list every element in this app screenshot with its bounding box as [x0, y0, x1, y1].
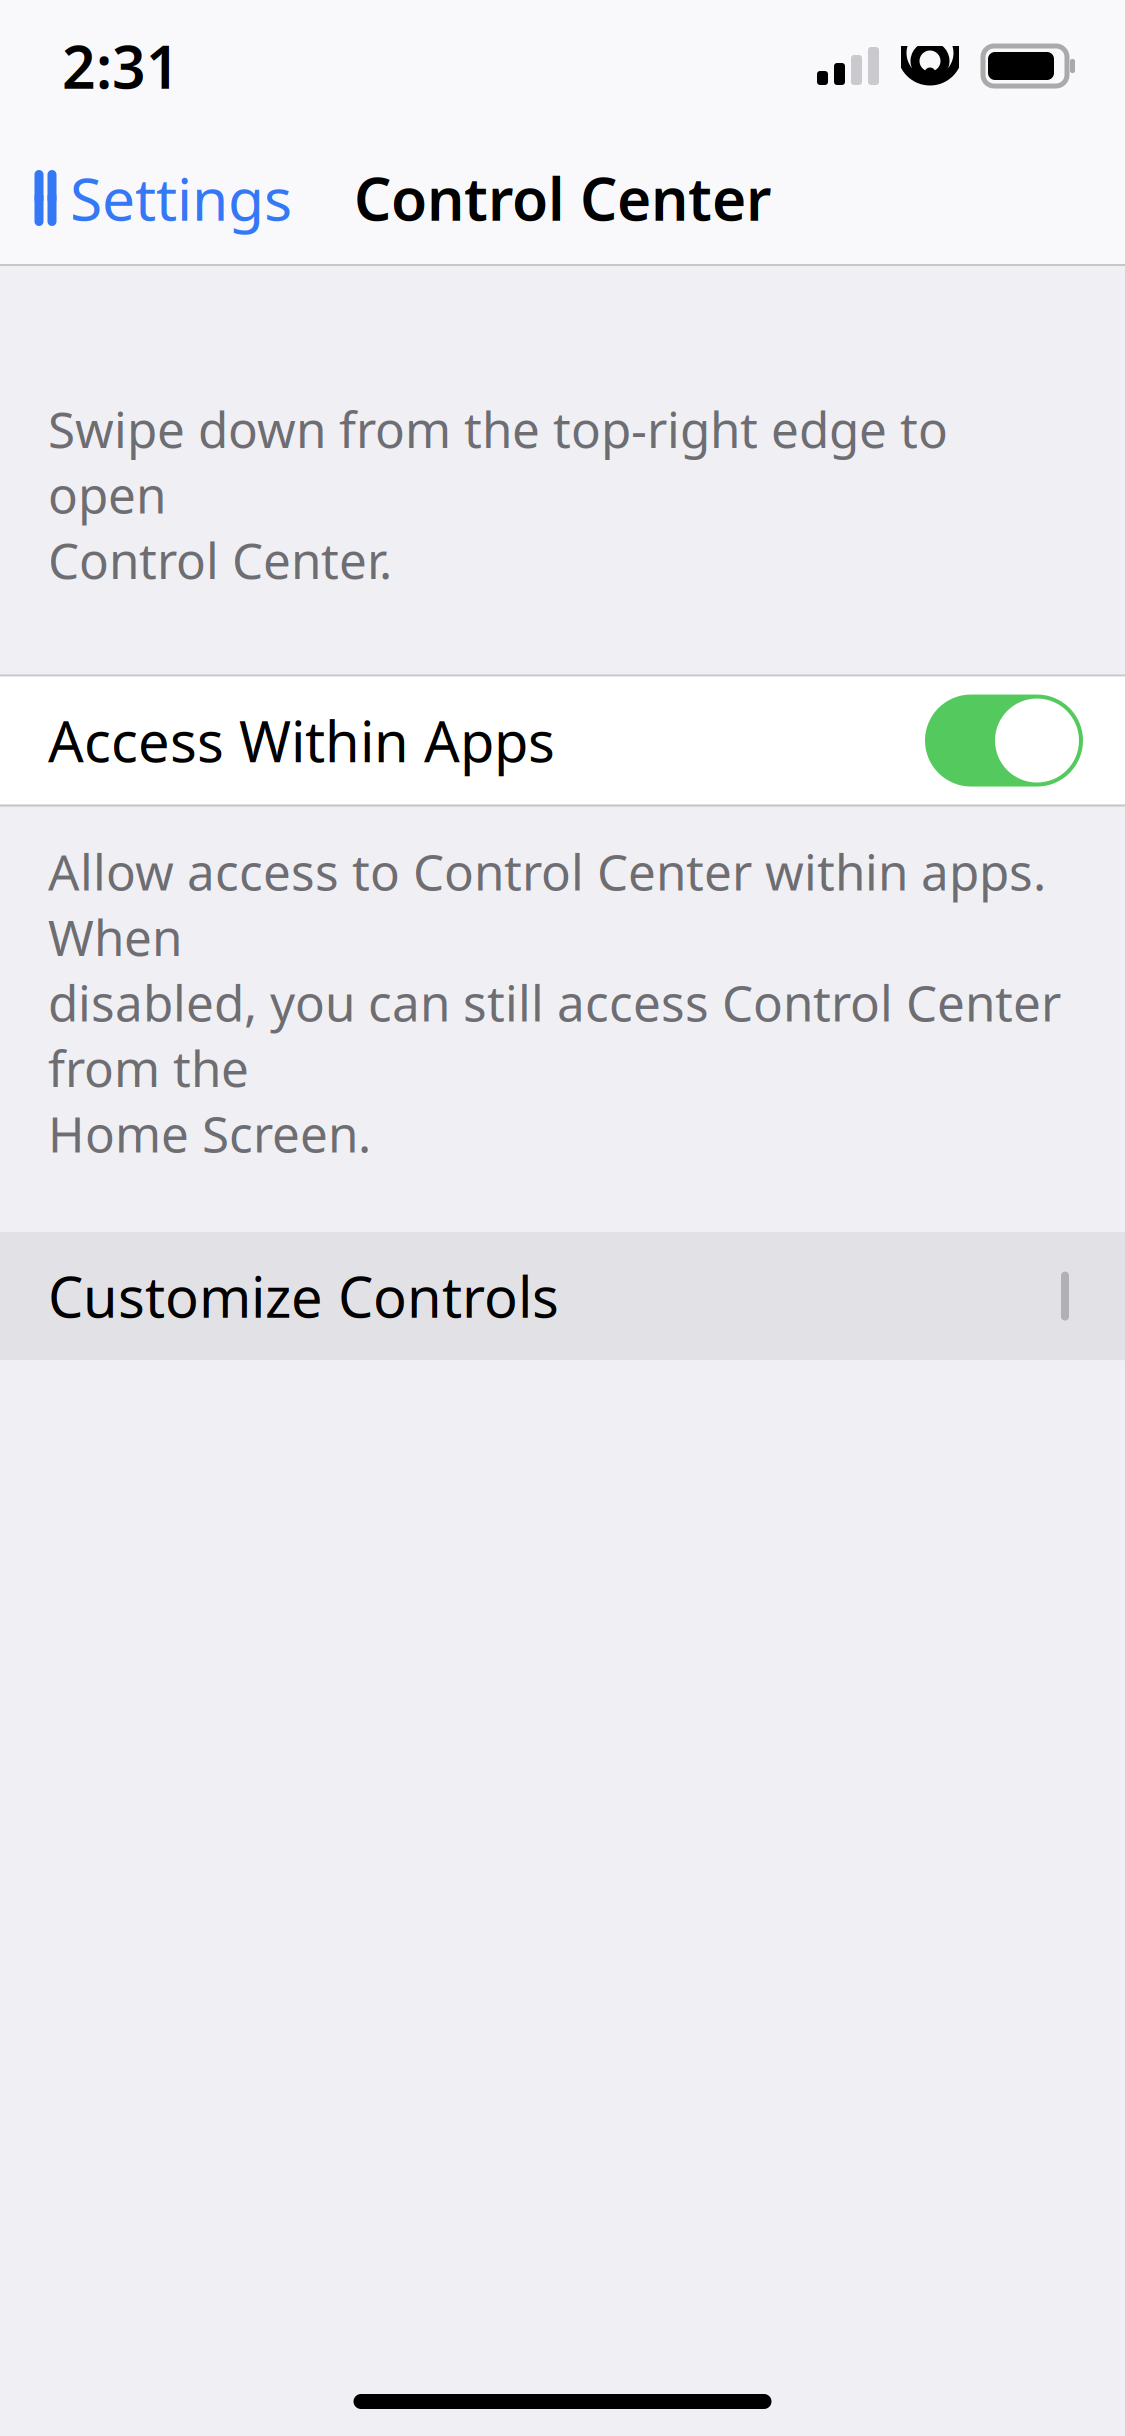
staticText: 2:31 [62, 27, 180, 105]
button[interactable]: Access Within Apps [925, 694, 1083, 786]
staticText: Access Within Apps [48, 703, 555, 778]
staticText: Allow access to Control Center within ap… [48, 838, 1061, 1166]
button[interactable]: Customize Controls [0, 1232, 1125, 1360]
staticText: Control Center [354, 159, 771, 237]
staticText: Customize Controls [48, 1259, 559, 1333]
button[interactable]: Access Within Apps [0, 676, 1125, 804]
staticText: Swipe down from the top-right edge to op… [48, 396, 948, 592]
button[interactable]: Settings [0, 145, 308, 251]
staticText: Settings [70, 159, 292, 237]
